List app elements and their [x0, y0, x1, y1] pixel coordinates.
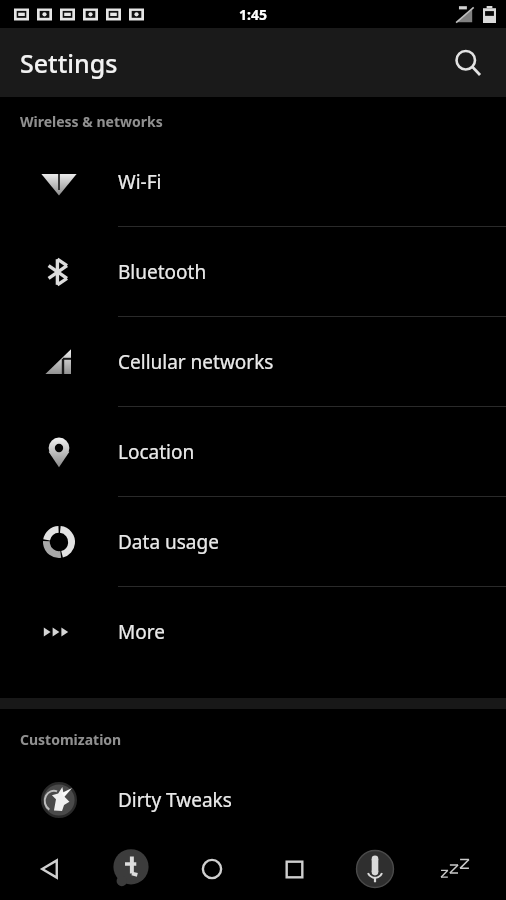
button[interactable]: Data usage — [0, 497, 506, 587]
staticText: Wireless & networks — [20, 112, 163, 131]
button[interactable]: Home — [181, 838, 243, 900]
button[interactable]: Search — [440, 35, 496, 91]
button[interactable]: Wi-Fi — [0, 137, 506, 227]
button[interactable]: Bluetooth — [0, 227, 506, 317]
button[interactable]: Voice search — [344, 838, 406, 900]
staticText: Settings — [20, 46, 118, 80]
staticText: Bluetooth — [118, 259, 207, 285]
staticText: Customization — [20, 730, 122, 749]
button[interactable]: Back — [19, 838, 81, 900]
button[interactable]: Sleep — [425, 838, 487, 900]
button[interactable]: Location — [0, 407, 506, 497]
staticText: Dirty Tweaks — [118, 787, 232, 813]
button[interactable]: Recents — [263, 838, 325, 900]
staticText: Cellular networks — [118, 349, 274, 375]
button[interactable]: More — [0, 587, 506, 676]
staticText: 1:45 — [239, 5, 267, 24]
staticText: Wi-Fi — [118, 169, 162, 195]
staticText: Location — [118, 439, 195, 465]
button[interactable]: Cellular networks — [0, 317, 506, 407]
button[interactable]: Tumblr — [100, 838, 162, 900]
staticText: More — [118, 619, 165, 645]
button[interactable]: Dirty Tweaks — [0, 755, 506, 844]
staticText: Data usage — [118, 529, 219, 555]
